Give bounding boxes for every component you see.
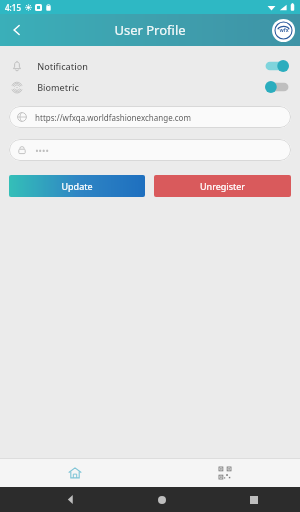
staticText: Notification [37,60,88,72]
staticText: https://wfxqa.worldfashionexchange.com [35,112,191,123]
button[interactable]: Toggle on [264,59,290,73]
button[interactable]: Update [9,175,145,197]
staticText: Unregister [200,180,245,192]
button[interactable]: Biometric [0,76,300,97]
staticText: 4:15 [5,2,21,13]
button[interactable]: Home [0,458,150,487]
button[interactable]: Toggle off [264,80,290,94]
button[interactable]: •••• [9,139,291,161]
button[interactable]: Back [4,17,30,43]
staticText: wfx [279,27,289,34]
button[interactable]: Unregister [154,175,291,197]
button[interactable]: Scan QR code [150,458,300,487]
staticText: User Profile [114,21,186,39]
button[interactable]: Notification [0,55,300,76]
button[interactable]: Profile avatar [272,19,295,42]
staticText: •••• [35,144,49,156]
staticText: Biometric [37,81,79,93]
button[interactable]: https://wfxqa.worldfashionexchange.com [9,106,291,128]
staticText: Update [61,180,93,192]
